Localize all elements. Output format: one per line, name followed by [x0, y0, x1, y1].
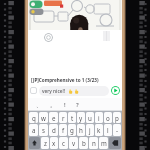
staticText: m — [101, 139, 107, 147]
button[interactable]: 。 — [46, 98, 59, 111]
button[interactable]: d — [49, 124, 58, 136]
button[interactable]: m — [99, 137, 108, 149]
button[interactable]: x — [50, 137, 58, 149]
staticText: 。 — [50, 101, 56, 109]
button[interactable]: q — [29, 112, 38, 123]
button[interactable]: Send — [111, 86, 120, 95]
button[interactable]: g — [68, 124, 76, 136]
button[interactable]: Backspace — [109, 137, 121, 149]
staticText: - — [116, 126, 118, 134]
button[interactable]: l — [104, 124, 112, 136]
button[interactable]: Shift — [29, 137, 40, 149]
button[interactable]: y — [77, 112, 85, 123]
button[interactable]: 、 — [32, 98, 46, 111]
staticText: b — [82, 139, 86, 147]
staticText: r — [62, 114, 65, 122]
staticText: x — [52, 139, 56, 147]
staticText: c — [62, 139, 65, 147]
button[interactable]: j — [86, 124, 94, 136]
staticText: d — [52, 126, 56, 134]
staticText: [JP]Comprehensive to 1 (3/23) — [31, 77, 99, 83]
staticText: a — [32, 126, 36, 134]
staticText: j — [89, 126, 91, 134]
button[interactable]: Reaction — [44, 33, 53, 42]
staticText: 、 — [36, 101, 42, 109]
staticText: k — [97, 126, 101, 134]
staticText: very nice!! — [42, 88, 66, 95]
button[interactable]: n — [89, 137, 98, 149]
staticText: ? — [76, 101, 79, 109]
button[interactable]: t — [68, 112, 76, 123]
button[interactable]: b — [79, 137, 88, 149]
staticText: l — [107, 126, 109, 134]
staticText: q — [32, 114, 36, 122]
staticText: t — [71, 114, 74, 122]
staticText: p — [115, 114, 119, 122]
staticText: o — [106, 114, 110, 122]
staticText: v — [72, 139, 76, 147]
button[interactable]: r — [59, 112, 67, 123]
button[interactable]: ? — [71, 98, 83, 111]
button[interactable]: Add attachment — [30, 87, 37, 94]
staticText: g — [70, 126, 74, 134]
button[interactable]: o — [104, 112, 112, 123]
staticText: e — [52, 114, 56, 122]
button[interactable]: i — [95, 112, 103, 123]
button[interactable]: very nice!! — [39, 86, 109, 96]
button[interactable]: a — [29, 124, 38, 136]
staticText: n — [92, 139, 96, 147]
staticText: w — [41, 114, 46, 122]
button[interactable]: s — [39, 124, 48, 136]
button[interactable]: ! — [59, 98, 71, 111]
staticText: y — [79, 114, 83, 122]
button[interactable]: f — [59, 124, 67, 136]
button[interactable]: c — [59, 137, 68, 149]
button[interactable]: e — [49, 112, 58, 123]
button[interactable]: k — [95, 124, 103, 136]
staticText: i — [98, 114, 100, 122]
button[interactable]: p — [113, 112, 121, 123]
button[interactable]: v — [69, 137, 78, 149]
button[interactable]: z — [41, 137, 49, 149]
staticText: h — [79, 126, 83, 134]
staticText: ! — [64, 101, 66, 109]
staticText: s — [42, 126, 45, 134]
button[interactable]: h — [77, 124, 85, 136]
staticText: f — [62, 126, 65, 134]
button[interactable]: u — [86, 112, 94, 123]
staticText: u — [88, 114, 92, 122]
button[interactable]: - — [113, 124, 121, 136]
staticText: z — [44, 139, 47, 147]
button[interactable]: w — [39, 112, 48, 123]
